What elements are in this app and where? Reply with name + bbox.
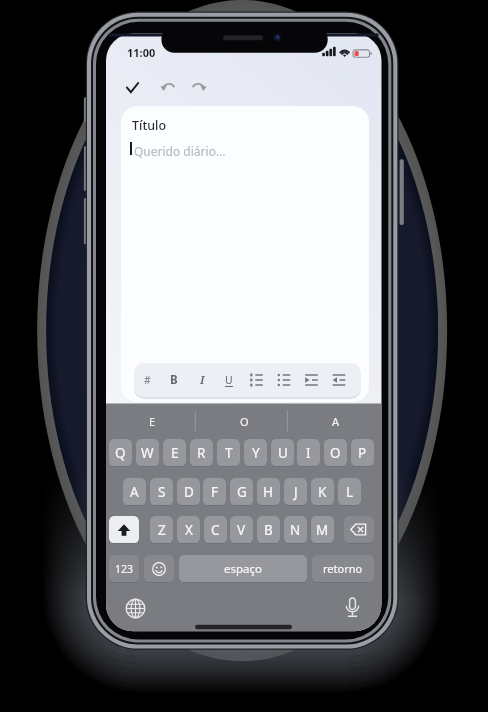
button[interactable]: A <box>290 408 382 434</box>
button[interactable] <box>144 555 174 583</box>
button[interactable] <box>157 76 181 100</box>
button[interactable]: W <box>136 439 159 467</box>
button[interactable] <box>121 594 150 623</box>
button[interactable]: E <box>163 439 186 467</box>
button[interactable] <box>186 76 210 100</box>
staticText: D <box>184 483 194 501</box>
button[interactable]: M <box>311 516 334 544</box>
button[interactable]: A <box>123 478 146 506</box>
staticText: L <box>346 483 354 501</box>
button[interactable]: E <box>106 408 198 434</box>
button[interactable]: P <box>351 439 374 467</box>
button[interactable]: H <box>257 478 280 506</box>
button[interactable]: espaço <box>179 555 307 583</box>
staticText: U <box>278 444 288 462</box>
staticText: V <box>237 521 246 539</box>
button[interactable]: B <box>160 363 188 397</box>
staticText: I <box>306 444 311 462</box>
button[interactable]: G <box>230 478 253 506</box>
staticText: O <box>330 444 341 462</box>
staticText: Y <box>252 444 260 462</box>
staticText: H <box>263 483 274 501</box>
button[interactable]: Z <box>150 516 173 544</box>
button[interactable]: F <box>203 478 226 506</box>
staticText: K <box>318 483 327 501</box>
staticText: Querido diário... <box>134 143 226 159</box>
button[interactable]: Título <box>121 106 369 402</box>
button[interactable]: D <box>177 478 200 506</box>
button[interactable] <box>121 76 145 100</box>
staticText: F <box>211 483 219 501</box>
staticText: M <box>316 521 329 539</box>
button[interactable]: I <box>188 363 216 397</box>
button[interactable] <box>109 516 139 544</box>
staticText: G <box>237 483 247 501</box>
button[interactable]: U <box>215 363 243 397</box>
button[interactable]: J <box>284 478 307 506</box>
button[interactable]: C <box>204 516 227 544</box>
button[interactable]: R <box>190 439 213 467</box>
staticText: X <box>185 521 193 539</box>
button[interactable]: I <box>297 439 320 467</box>
button[interactable]: L <box>338 478 361 506</box>
button[interactable]: K <box>311 478 334 506</box>
button[interactable]: O <box>198 408 290 434</box>
button[interactable]: B <box>257 516 280 544</box>
button[interactable]: V <box>230 516 253 544</box>
button[interactable]: Q <box>109 439 132 467</box>
button[interactable]: O <box>324 439 347 467</box>
button[interactable]: S <box>150 478 173 506</box>
staticText: P <box>358 444 367 462</box>
staticText: S <box>158 483 166 501</box>
staticText: retorno <box>323 561 363 576</box>
staticText: Z <box>158 521 166 539</box>
staticText: R <box>197 444 206 462</box>
staticText: C <box>211 521 220 539</box>
staticText: T <box>225 444 233 462</box>
staticText: espaço <box>224 561 262 577</box>
button[interactable] <box>338 594 367 623</box>
button[interactable]: U <box>271 439 294 467</box>
button[interactable]: retorno <box>312 555 374 583</box>
staticText: W <box>141 444 154 462</box>
staticText: E <box>149 414 156 429</box>
button[interactable]: N <box>284 516 307 544</box>
staticText: I <box>200 372 205 388</box>
button[interactable]: X <box>177 516 200 544</box>
button[interactable] <box>344 516 374 544</box>
staticText: 123 <box>115 562 134 576</box>
staticText: # <box>144 373 151 387</box>
staticText: 11:00 <box>127 45 156 60</box>
button[interactable]: # <box>134 363 161 397</box>
staticText: J <box>294 483 298 501</box>
staticText: A <box>332 414 340 429</box>
staticText: Título <box>132 117 167 134</box>
button[interactable]: T <box>217 439 240 467</box>
staticText: U <box>225 373 233 387</box>
button[interactable]: 123 <box>109 555 139 583</box>
staticText: E <box>171 444 179 462</box>
button[interactable]: Y <box>244 439 267 467</box>
staticText: A <box>130 483 139 501</box>
staticText: B <box>264 521 273 539</box>
staticText: N <box>290 521 301 539</box>
staticText: Q <box>115 444 126 462</box>
staticText: O <box>240 414 249 429</box>
staticText: B <box>170 372 178 388</box>
